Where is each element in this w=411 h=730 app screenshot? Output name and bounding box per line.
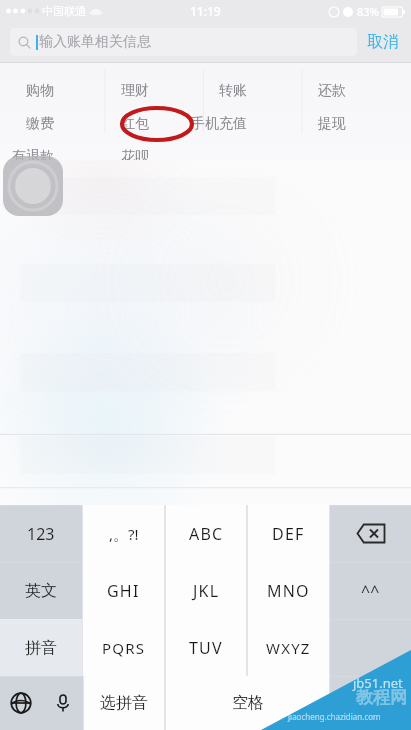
button[interactable]: 有退款 xyxy=(6,145,60,169)
staticText: 缴费 xyxy=(26,115,54,133)
staticText: TUV xyxy=(189,637,223,659)
button[interactable]: 输入账单相关信息 xyxy=(10,28,357,56)
staticText: DEF xyxy=(272,523,305,545)
button[interactable]: JKL xyxy=(165,562,247,619)
staticText: 教程网 xyxy=(356,687,407,708)
staticText: 83% xyxy=(357,4,379,19)
button[interactable]: 英文 xyxy=(0,562,82,619)
button[interactable]: 空格 xyxy=(165,676,330,730)
button[interactable]: Backspace xyxy=(330,505,411,562)
button[interactable]: ,。?! xyxy=(82,505,165,562)
button[interactable]: ABC xyxy=(165,505,247,562)
button[interactable]: 取消 xyxy=(357,28,401,56)
button[interactable]: GHI xyxy=(82,562,165,619)
staticText: PQRS xyxy=(102,638,146,658)
button[interactable]: 购物 xyxy=(20,79,60,103)
button[interactable]: 还款 xyxy=(312,79,352,103)
staticText: 中国联通 xyxy=(42,4,86,18)
button[interactable]: 花呗 xyxy=(115,145,155,169)
button[interactable]: AssistiveTouch xyxy=(3,156,63,216)
staticText: 花呗 xyxy=(121,148,149,166)
button[interactable]: ^^ xyxy=(330,562,411,619)
staticText: ,。?! xyxy=(109,524,139,544)
staticText: 还款 xyxy=(318,82,346,100)
staticText: WXYZ xyxy=(266,638,311,658)
staticText: jiaocheng.chazidian.com xyxy=(288,711,381,722)
staticText: 英文 xyxy=(25,581,57,601)
button[interactable]: TUV xyxy=(165,619,247,676)
staticText: 选拼音 xyxy=(100,693,148,713)
button[interactable]: 手机充值 xyxy=(185,112,253,136)
staticText: 取消 xyxy=(367,32,399,52)
staticText: ABC xyxy=(189,523,224,545)
button[interactable]: 提现 xyxy=(312,112,352,136)
staticText: 11:19 xyxy=(190,3,221,19)
button[interactable]: 红包 xyxy=(115,112,155,136)
staticText: jb51.net xyxy=(353,674,403,692)
button[interactable]: MNO xyxy=(247,562,330,619)
button[interactable] xyxy=(330,619,411,676)
staticText: GHI xyxy=(107,580,140,602)
button[interactable]: 拼音 xyxy=(0,619,82,676)
staticText: 理财 xyxy=(121,82,149,100)
staticText: 123 xyxy=(27,523,55,545)
staticText: MNO xyxy=(267,580,310,602)
staticText: 转账 xyxy=(219,82,247,100)
staticText: 拼音 xyxy=(25,638,57,658)
button[interactable]: Voice input xyxy=(42,676,83,730)
button[interactable]: 123 xyxy=(0,505,82,562)
staticText: 空格 xyxy=(232,693,264,713)
staticText: 提现 xyxy=(318,115,346,133)
staticText: ^^ xyxy=(361,580,380,602)
button[interactable] xyxy=(330,676,411,730)
button[interactable]: Switch language xyxy=(0,676,42,730)
button[interactable]: WXYZ xyxy=(247,619,330,676)
button[interactable]: DEF xyxy=(247,505,330,562)
button[interactable]: 理财 xyxy=(115,79,155,103)
staticText: 红包 xyxy=(121,115,149,133)
button[interactable]: 转账 xyxy=(213,79,253,103)
staticText: 购物 xyxy=(26,82,54,100)
button[interactable]: 选拼音 xyxy=(83,676,165,730)
staticText: 有退款 xyxy=(12,148,54,166)
button[interactable]: 缴费 xyxy=(20,112,60,136)
staticText: 手机充值 xyxy=(191,115,247,133)
button[interactable]: PQRS xyxy=(82,619,165,676)
staticText: 输入账单相关信息 xyxy=(39,33,151,51)
staticText: JKL xyxy=(193,580,220,602)
